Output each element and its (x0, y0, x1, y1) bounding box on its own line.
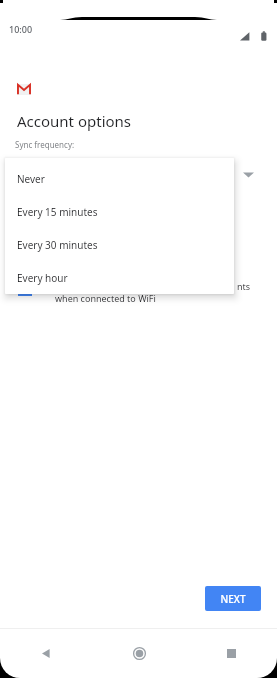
button[interactable]: Recent apps (185, 629, 277, 678)
button[interactable]: NEXT (205, 586, 261, 611)
other: Gmail (17, 84, 31, 95)
button[interactable]: Every hour (5, 261, 234, 294)
button[interactable]: Back (0, 629, 93, 678)
button[interactable]: Every 15 minutes (5, 195, 234, 228)
button[interactable]: Never (5, 162, 234, 195)
staticText: NEXT (220, 592, 246, 606)
staticText: nts (237, 280, 251, 292)
staticText: Every 15 minutes (17, 205, 98, 219)
staticText: when connected to WiFi (55, 292, 156, 304)
staticText: Every hour (17, 271, 68, 285)
staticText: 10:00 (9, 23, 33, 35)
staticText: Every 30 minutes (17, 238, 98, 252)
button[interactable]: Every 30 minutes (5, 228, 234, 261)
button[interactable]: Home (93, 629, 185, 678)
staticText: Sync frequency: (15, 139, 75, 150)
staticText: Never (17, 172, 45, 186)
staticText: Account options (17, 111, 132, 131)
